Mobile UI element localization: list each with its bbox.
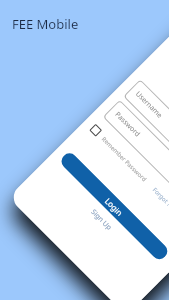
button[interactable]: Password bbox=[103, 100, 169, 218]
staticText: FEE Mobile bbox=[12, 15, 79, 33]
button[interactable]: Forgot ? bbox=[151, 186, 169, 208]
button[interactable]: Sign Up bbox=[46, 165, 156, 274]
staticText: Sign Up bbox=[89, 207, 114, 233]
button[interactable]: Login bbox=[58, 150, 169, 262]
staticText: Remember Password bbox=[100, 135, 148, 183]
staticText: Login bbox=[103, 195, 125, 218]
staticText: Username bbox=[133, 89, 165, 121]
staticText: Password bbox=[113, 110, 142, 139]
button[interactable] bbox=[89, 124, 102, 137]
button[interactable]: Username bbox=[123, 79, 169, 197]
